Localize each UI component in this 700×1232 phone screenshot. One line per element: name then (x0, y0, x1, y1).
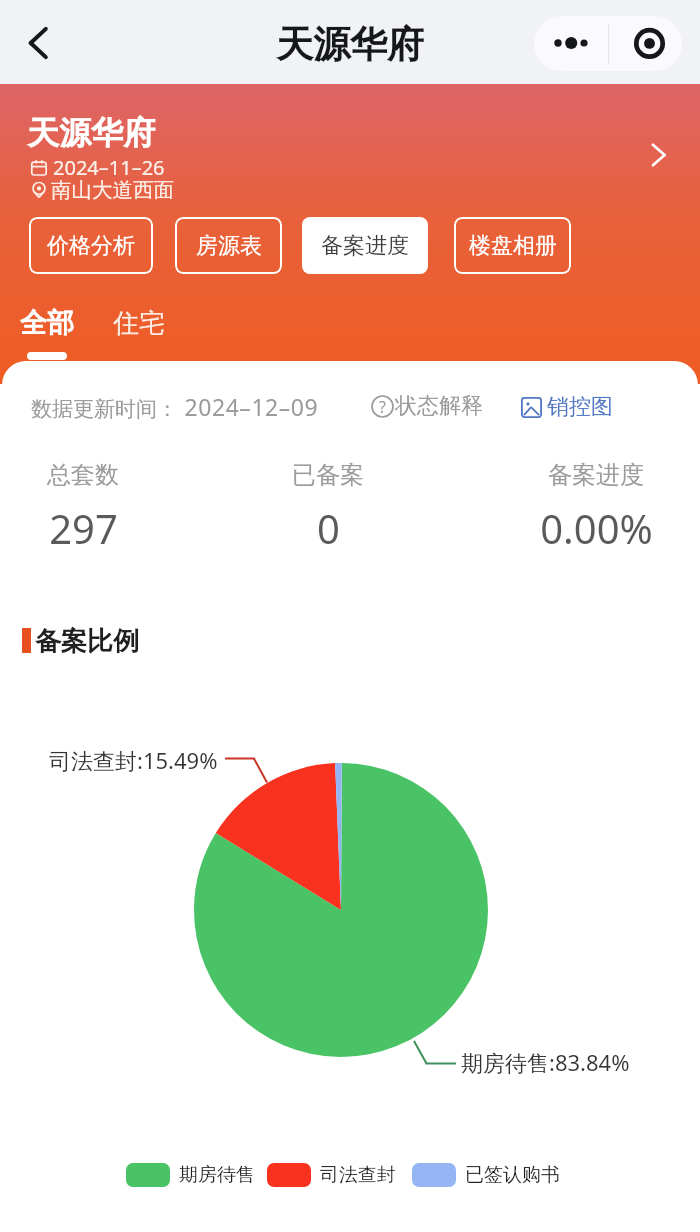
button[interactable]: 总套数 (2, 460, 183, 555)
button[interactable]: 司法查封 (267, 1163, 396, 1187)
staticText: 价格分析 (47, 232, 135, 260)
staticText: 状态解释 (395, 392, 483, 420)
button[interactable]: Project details (638, 135, 678, 175)
button[interactable]: 期房待售 (126, 1163, 255, 1187)
button[interactable]: Back (14, 19, 62, 67)
staticText: 备案进度 (321, 232, 409, 260)
staticText: ? (379, 396, 386, 418)
button[interactable]: 全部 (20, 306, 74, 340)
staticText: 楼盘相册 (469, 232, 557, 260)
button[interactable]: 房源表 (175, 217, 282, 274)
staticText: 已签认购书 (465, 1163, 560, 1187)
staticText: 数据更新时间： 2024–12–09 (31, 391, 319, 422)
staticText: 已备案 (292, 460, 364, 490)
staticText: 0.00% (540, 501, 653, 555)
staticText: 期房待售 (179, 1163, 255, 1187)
staticText: 总套数 (47, 460, 119, 490)
staticText: 期房待售:83.84% (461, 1047, 630, 1077)
button[interactable]: 住宅 (113, 307, 165, 340)
staticText: 备案进度 (548, 460, 644, 490)
button[interactable]: 备案进度 (496, 460, 696, 555)
staticText: 2024–11–26 (53, 154, 165, 181)
button[interactable]: 已备案 (228, 460, 428, 555)
button[interactable]: More options (534, 16, 608, 71)
staticText: 司法查封 (320, 1163, 396, 1187)
staticText: 司法查封:15.49% (49, 745, 218, 775)
staticText: 房源表 (196, 232, 262, 260)
button[interactable]: ? (371, 392, 483, 420)
button[interactable]: 已签认购书 (412, 1163, 560, 1187)
button[interactable]: 楼盘相册 (454, 217, 571, 274)
staticText: 天源华府 (27, 113, 155, 153)
staticText: 备案比例 (35, 625, 139, 658)
staticText: 297 (49, 501, 118, 555)
button[interactable]: 销控图 (521, 393, 613, 421)
button[interactable]: Close (609, 16, 682, 71)
staticText: 销控图 (547, 393, 613, 421)
staticText: 南山大道西面 (51, 177, 174, 203)
staticText: 0 (317, 501, 340, 555)
button[interactable]: 备案进度 (302, 217, 428, 274)
button[interactable]: 价格分析 (29, 217, 153, 274)
staticText: 天源华府 (276, 21, 424, 68)
